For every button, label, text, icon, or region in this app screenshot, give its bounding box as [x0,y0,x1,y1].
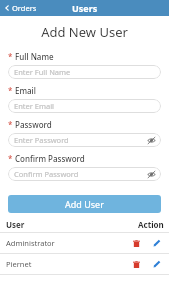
staticText: Full Name [15,51,54,62]
staticText: Users [72,2,98,14]
button[interactable]: Enter Password [8,133,161,147]
staticText: * [8,51,13,62]
button[interactable]: Show password [147,136,156,145]
staticText: Add New User [0,23,169,41]
staticText: Confirm Password [14,169,79,179]
button[interactable]: Edit Piernet [151,258,163,270]
staticText: Email [15,85,36,96]
staticText: Orders [12,3,37,13]
button[interactable]: Show password [147,170,156,179]
button[interactable]: Confirm Password [8,167,161,181]
staticText: * [8,85,13,96]
staticText: Piernet [6,259,32,269]
staticText: Add User [65,198,104,210]
button[interactable]: Enter Full Name [8,65,161,79]
button[interactable]: Orders [0,1,43,15]
button[interactable]: Delete Administrator [130,237,142,249]
staticText: Enter Full Name [14,67,71,77]
button[interactable]: Add User [8,195,161,213]
staticText: Enter Password [14,135,69,145]
staticText: Password [15,119,52,130]
button[interactable]: Edit Administrator [151,237,163,249]
staticText: * [8,153,13,164]
staticText: * [8,119,13,130]
button[interactable]: Enter Email [8,99,161,113]
button[interactable]: Delete Piernet [130,258,142,270]
staticText: Enter Email [14,101,55,111]
staticText: User [6,219,25,230]
staticText: Confirm Password [15,153,85,164]
staticText: Administrator [6,238,55,248]
staticText: Action [138,219,164,230]
